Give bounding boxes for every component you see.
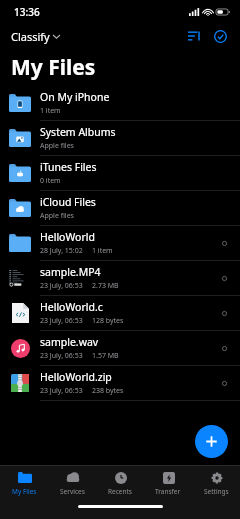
button[interactable]: My Files xyxy=(0,466,48,499)
button[interactable]: On My iPhone xyxy=(0,86,240,121)
staticText: Services xyxy=(60,487,85,496)
staticText: Classify xyxy=(11,29,50,44)
staticText: Apple files xyxy=(40,211,74,221)
staticText: 23 July, 06:53 xyxy=(40,316,83,326)
staticText: HelloWorld.zip xyxy=(40,370,112,384)
button[interactable]: System Albums xyxy=(0,121,240,156)
staticText: 23 July, 06:53 xyxy=(40,386,83,396)
staticText: Transfer xyxy=(155,487,181,496)
staticText: 13:36 xyxy=(14,5,40,19)
button[interactable]: More options xyxy=(216,235,232,251)
staticText: HelloWorld xyxy=(40,230,95,244)
staticText: Settings xyxy=(204,487,229,496)
button[interactable]: Recents xyxy=(96,466,144,499)
staticText: Apple files xyxy=(40,141,74,151)
button[interactable]: Sort xyxy=(184,26,204,46)
staticText: 23 July, 06:53 xyxy=(40,351,83,361)
button[interactable]: iTunes Files xyxy=(0,156,240,191)
staticText: 23 July, 06:53 xyxy=(40,281,83,291)
staticText: sample.MP4 xyxy=(40,265,101,279)
button[interactable]: HelloWorld.zip xyxy=(0,366,240,401)
button[interactable]: Settings xyxy=(192,466,240,499)
staticText: 2.73 MB xyxy=(92,281,119,291)
staticText: 128 bytes xyxy=(92,316,124,326)
staticText: 1 item xyxy=(40,106,61,116)
button[interactable]: Add xyxy=(195,425,228,458)
staticText: 28 July, 15:02 xyxy=(40,246,83,256)
button[interactable]: HelloWorld xyxy=(0,226,240,261)
staticText: Recents xyxy=(108,487,132,496)
staticText: On My iPhone xyxy=(40,90,110,104)
staticText: 1.57 MB xyxy=(92,351,119,361)
button[interactable]: sample.wav xyxy=(0,331,240,366)
staticText: HelloWorld.c xyxy=(40,300,103,314)
button[interactable]: More options xyxy=(216,375,232,391)
button[interactable]: sample.MP4 xyxy=(0,261,240,296)
staticText: System Albums xyxy=(40,125,116,139)
staticText: 0 item xyxy=(40,176,61,186)
button[interactable]: HelloWorld.c xyxy=(0,296,240,331)
staticText: 1 item xyxy=(92,246,113,256)
button[interactable]: Transfer xyxy=(144,466,192,499)
staticText: 238 bytes xyxy=(92,386,124,396)
button[interactable]: More options xyxy=(216,270,232,286)
button[interactable]: More options xyxy=(216,305,232,321)
staticText: My Files xyxy=(11,53,96,82)
staticText: sample.wav xyxy=(40,335,99,349)
staticText: iTunes Files xyxy=(40,160,97,174)
button[interactable]: Classify xyxy=(11,29,60,44)
button[interactable]: More options xyxy=(216,340,232,356)
button[interactable]: Select xyxy=(210,26,230,46)
button[interactable]: Services xyxy=(48,466,96,499)
staticText: My Files xyxy=(12,487,37,496)
staticText: iCloud Files xyxy=(40,195,96,209)
button[interactable]: iCloud Files xyxy=(0,191,240,226)
